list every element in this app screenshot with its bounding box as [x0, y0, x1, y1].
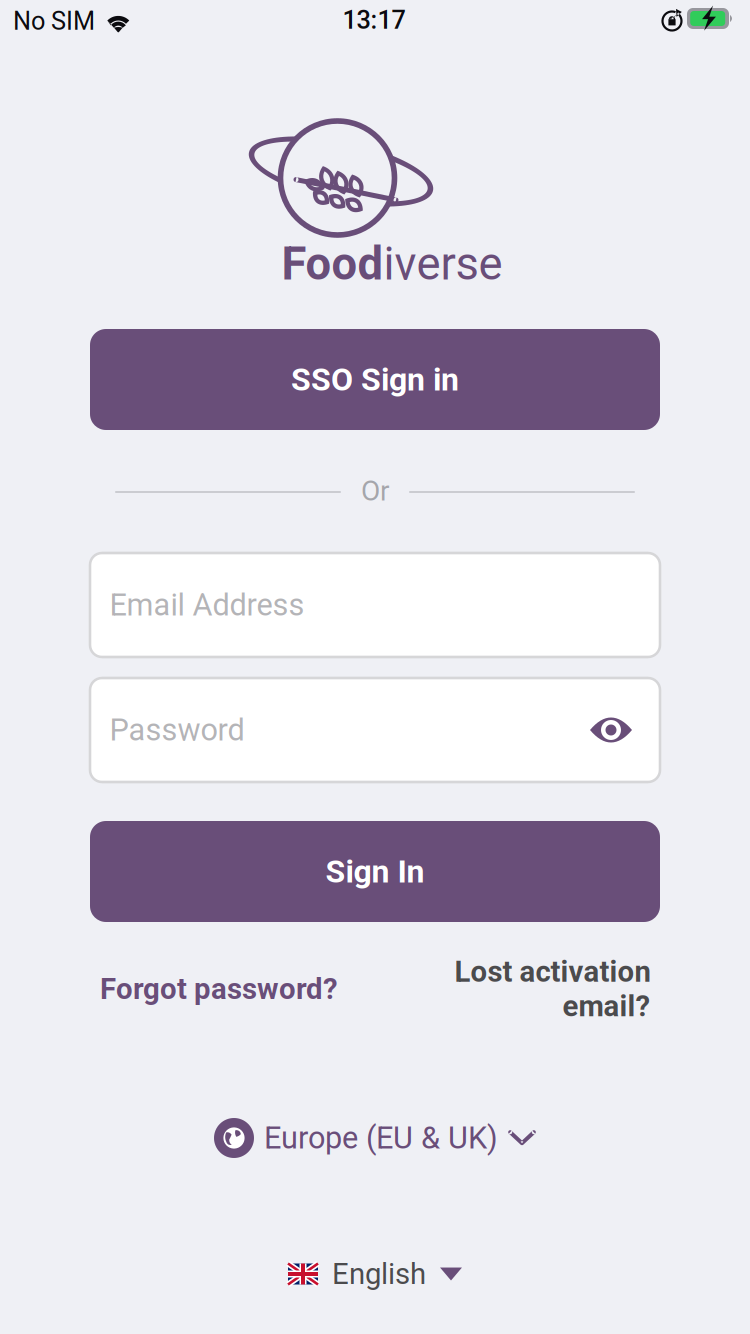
staticText: iverse	[383, 237, 502, 290]
button[interactable]: Password	[90, 678, 660, 782]
staticText: Sign In	[325, 853, 424, 890]
staticText: 13:17	[342, 5, 405, 35]
staticText: Lost activation email?	[454, 955, 650, 1023]
button[interactable]: English	[288, 1257, 462, 1291]
button[interactable]: SSO Sign in	[90, 329, 660, 430]
button[interactable]: Sign In	[90, 821, 660, 922]
button[interactable]: Europe (EU & UK)	[214, 1118, 536, 1158]
staticText: No SIM	[13, 6, 95, 36]
button[interactable]: Email Address	[90, 553, 660, 657]
staticText: Forgot password?	[100, 972, 338, 1006]
staticText: English	[332, 1257, 426, 1291]
staticText: Or	[361, 475, 389, 507]
button[interactable]: Forgot password?	[100, 969, 340, 1009]
staticText: SSO Sign in	[291, 361, 459, 398]
staticText: Password	[109, 712, 244, 748]
staticText: Food	[281, 237, 383, 290]
staticText: Europe (EU & UK)	[264, 1120, 498, 1156]
staticText: Email Address	[109, 587, 304, 623]
button[interactable]: Lost activation email?	[450, 949, 650, 1029]
